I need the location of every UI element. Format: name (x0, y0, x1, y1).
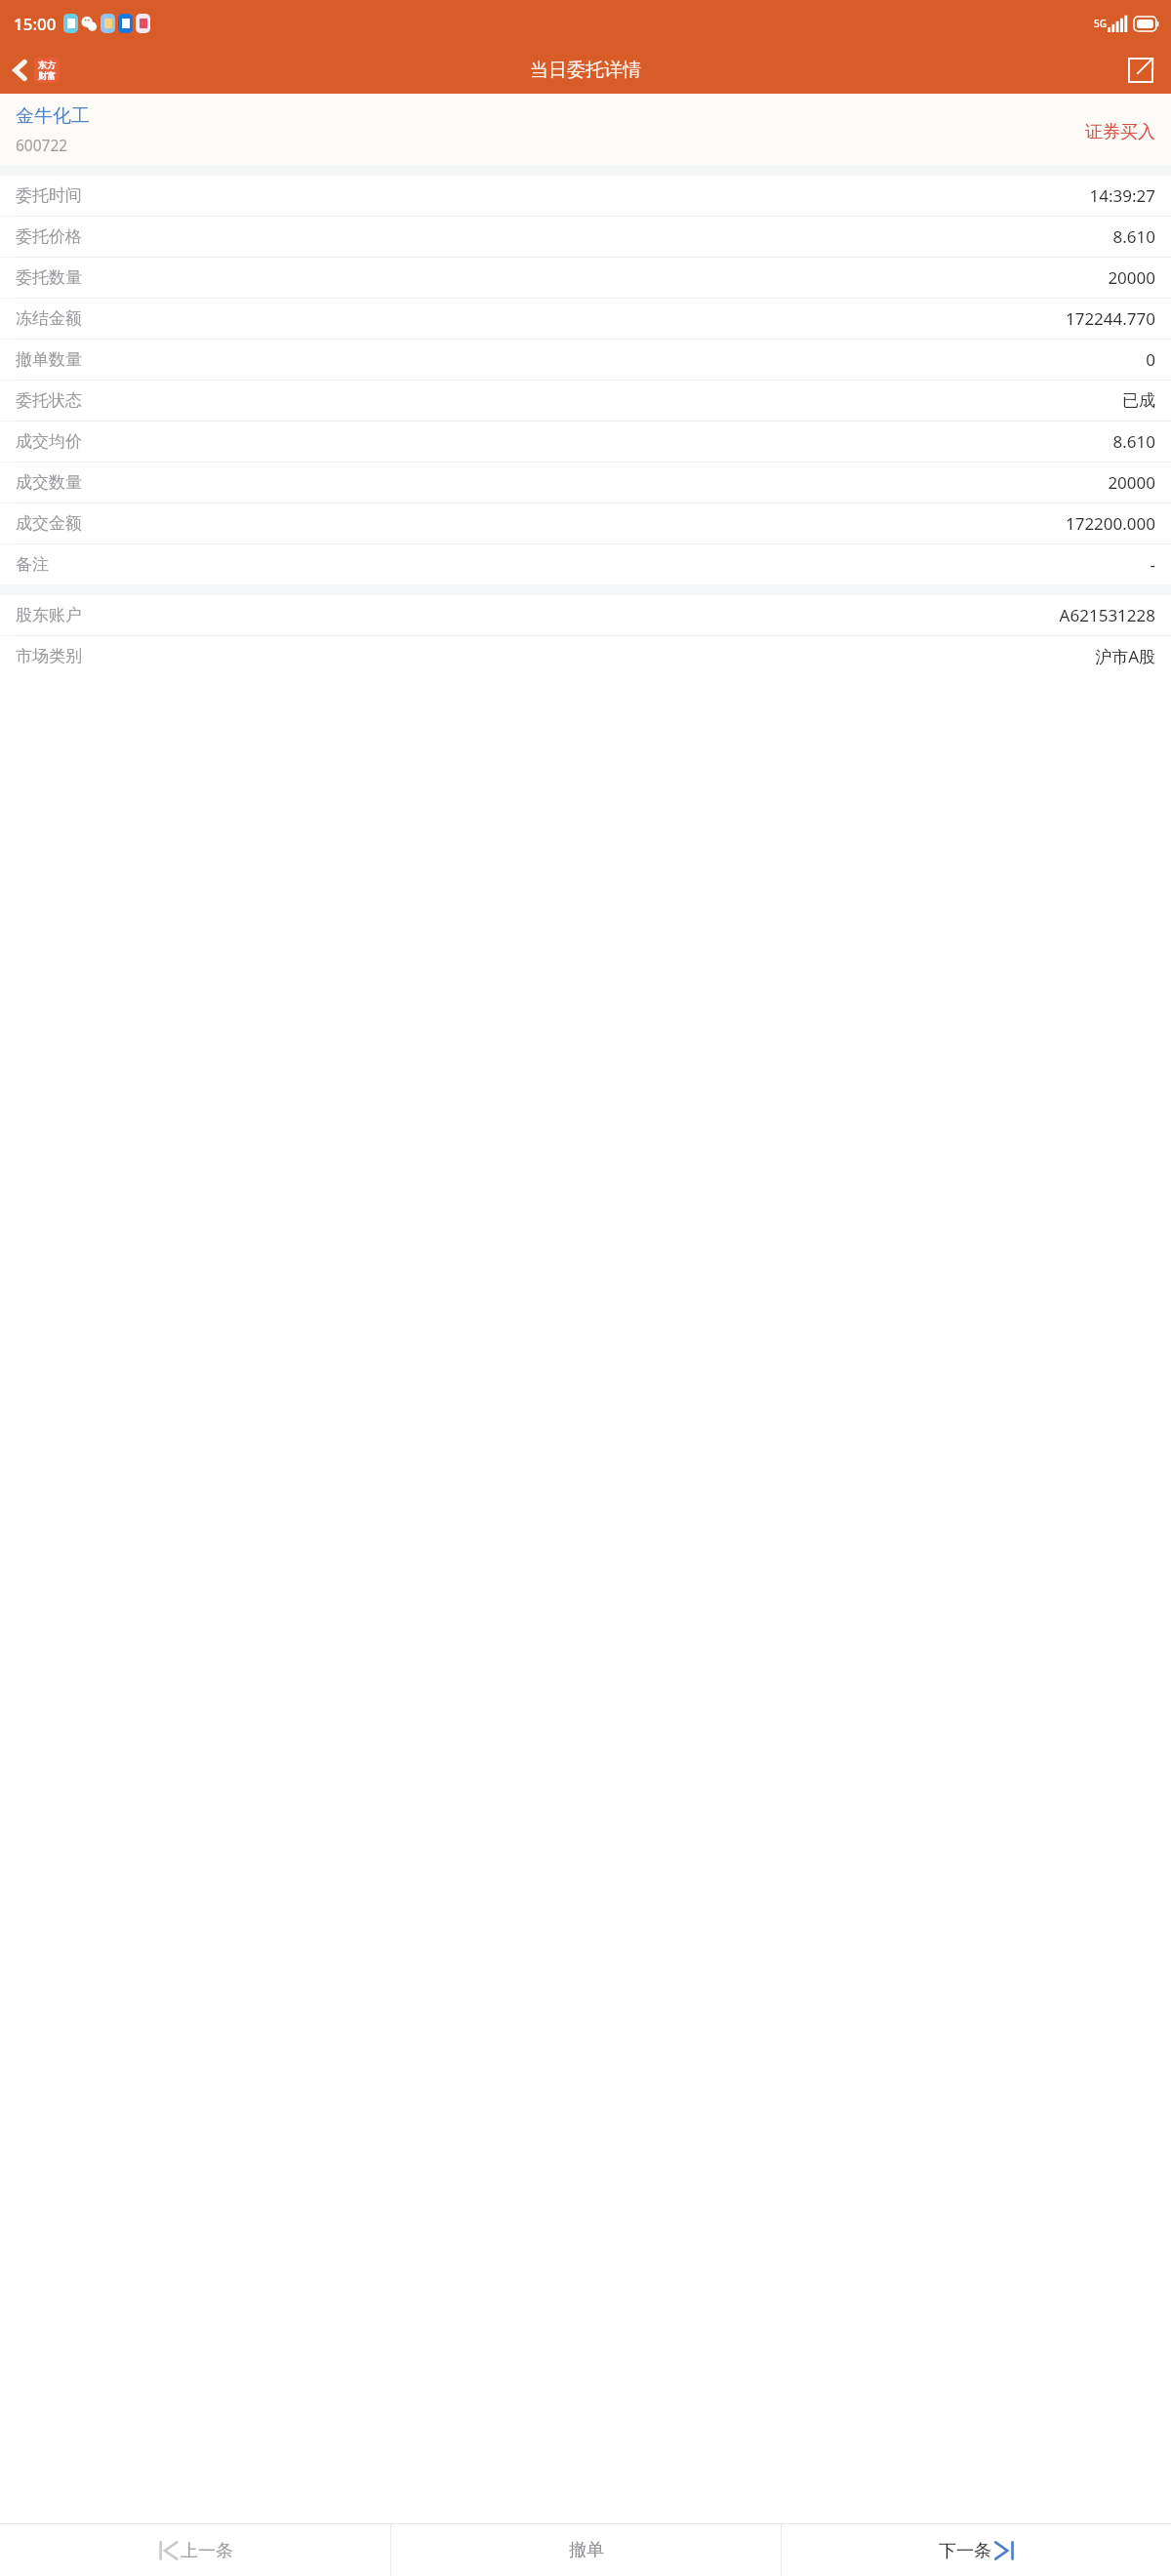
button[interactable]: Share (1110, 48, 1171, 93)
button[interactable]: 备注 (0, 544, 1171, 584)
staticText: 172244.770 (1065, 307, 1155, 330)
staticText: 上一条 (181, 2540, 233, 2562)
button[interactable]: 市场类别 (0, 636, 1171, 676)
staticText: 撤单数量 (16, 349, 82, 370)
staticText: 成交均价 (16, 431, 82, 452)
button[interactable]: 委托时间 (0, 176, 1171, 216)
staticText: 委托价格 (16, 226, 82, 247)
button[interactable]: 撤单数量 (0, 340, 1171, 380)
staticText: 股东账户 (16, 605, 82, 625)
staticText: 8.610 (1112, 430, 1155, 453)
staticText: 20000 (1108, 266, 1155, 289)
button[interactable]: 冻结金额 (0, 299, 1171, 339)
staticText: 成交数量 (16, 472, 82, 493)
staticText: 委托状态 (16, 390, 82, 411)
staticText: 委托时间 (16, 185, 82, 206)
staticText: 15:00 (14, 13, 57, 35)
staticText: 已成 (1122, 390, 1155, 411)
staticText: 20000 (1108, 471, 1155, 494)
staticText: 沪市A股 (1095, 645, 1155, 667)
button[interactable]: 成交均价 (0, 422, 1171, 462)
staticText: 东方 (38, 60, 56, 70)
staticText: 证券买入 (1085, 121, 1155, 143)
button[interactable]: 下一条 (782, 2524, 1171, 2576)
staticText: 金牛化工 (16, 104, 90, 128)
button[interactable]: Back to 东方财富 (0, 52, 67, 89)
button[interactable]: 成交金额 (0, 503, 1171, 543)
button[interactable]: 撤单 (391, 2524, 781, 2576)
staticText: - (1150, 553, 1155, 576)
staticText: 下一条 (939, 2540, 991, 2562)
button[interactable]: 股东账户 (0, 595, 1171, 635)
staticText: 撤单 (569, 2539, 604, 2561)
button[interactable]: 成交数量 (0, 463, 1171, 503)
staticText: 市场类别 (16, 646, 82, 666)
button[interactable]: 委托价格 (0, 217, 1171, 257)
staticText: 备注 (16, 554, 49, 575)
staticText: 冻结金额 (16, 308, 82, 329)
button[interactable]: 委托数量 (0, 258, 1171, 298)
staticText: 财富 (38, 70, 56, 81)
staticText: 成交金额 (16, 513, 82, 534)
staticText: 当日委托详情 (530, 59, 641, 82)
staticText: 委托数量 (16, 267, 82, 288)
button[interactable]: 上一条 (0, 2524, 390, 2576)
staticText: 172200.000 (1065, 512, 1155, 535)
staticText: A621531228 (1059, 604, 1155, 626)
staticText: 14:39:27 (1089, 184, 1155, 207)
button[interactable]: 委托状态 (0, 381, 1171, 421)
button[interactable]: 金牛化工 (0, 94, 1171, 165)
staticText: 600722 (16, 135, 68, 155)
staticText: 8.610 (1112, 225, 1155, 248)
staticText: 5G (1094, 17, 1107, 30)
staticText: 0 (1146, 348, 1155, 371)
